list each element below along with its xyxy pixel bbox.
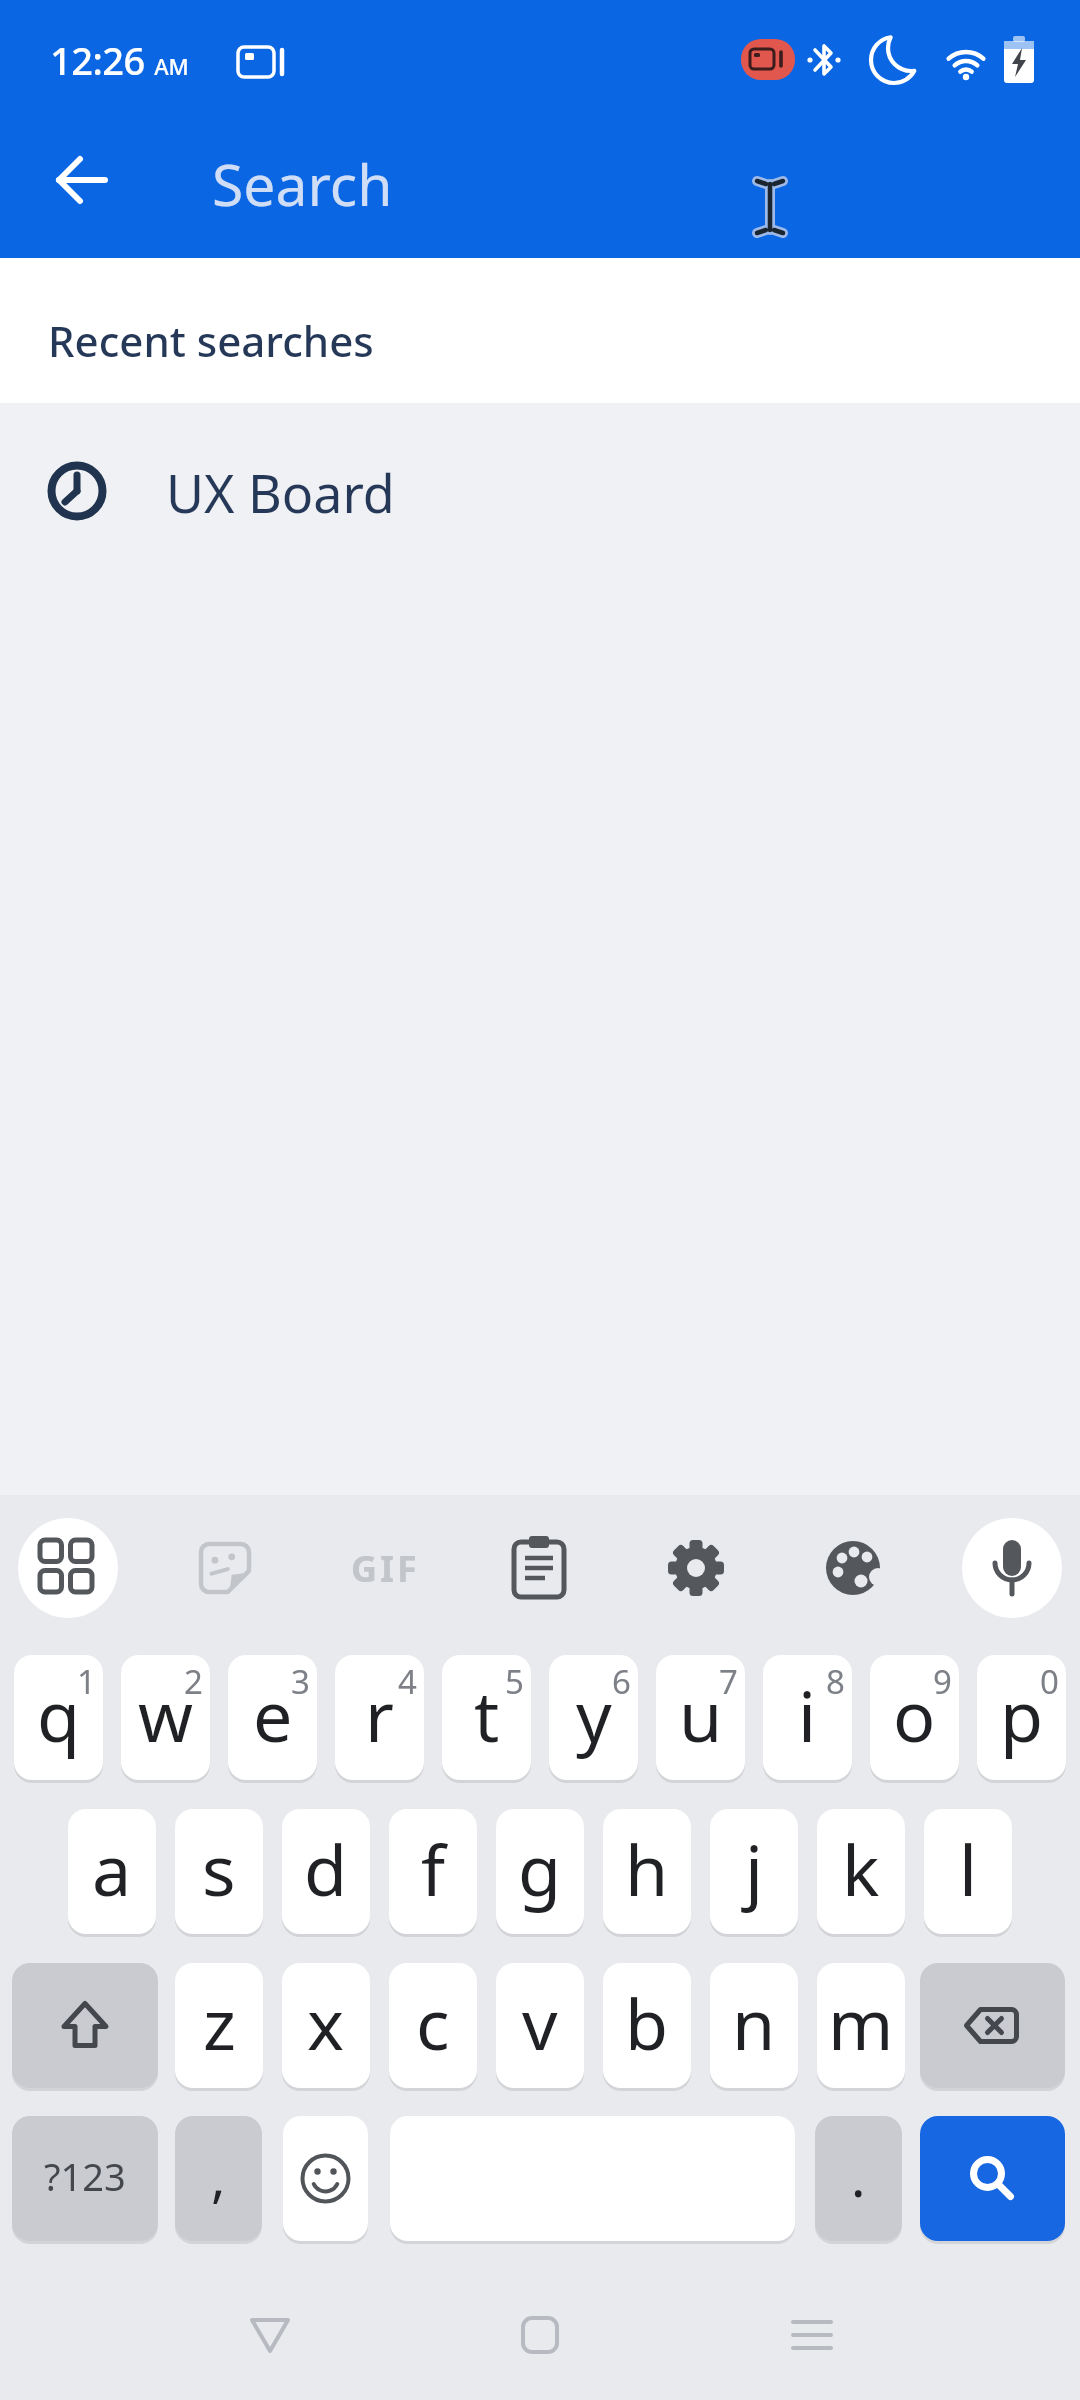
button[interactable]: , [175,2116,262,2241]
button[interactable] [824,1539,882,1597]
staticText: h [625,1821,669,1916]
staticText: l [959,1821,978,1916]
staticText: a [92,1821,132,1916]
button[interactable]: i [763,1655,852,1780]
staticText: c [416,1975,450,2070]
button[interactable] [12,1963,158,2088]
button[interactable]: s [175,1809,263,1934]
staticText: 0 [1040,1659,1059,1704]
button[interactable] [230,2300,310,2370]
button[interactable]: v [496,1963,584,2088]
staticText: 7 [719,1659,738,1704]
staticText: v [522,1975,558,2070]
staticText: s [202,1821,236,1916]
staticText: t [474,1667,500,1762]
staticText: m [828,1975,894,2070]
staticText: 2 [184,1659,203,1704]
button[interactable]: UX Board [0,430,1080,554]
staticText: 5 [505,1659,524,1704]
button[interactable]: u [656,1655,745,1780]
button[interactable] [500,2300,580,2370]
button[interactable] [920,2116,1065,2241]
button[interactable]: l [924,1809,1012,1934]
staticText: f [421,1821,446,1916]
staticText: d [304,1821,348,1916]
button[interactable]: . [815,2116,902,2241]
button[interactable]: x [282,1963,370,2088]
staticText: r [365,1667,394,1762]
button[interactable] [772,2300,852,2370]
button[interactable]: f [389,1809,477,1934]
staticText: 12:26 AM [50,34,189,86]
staticText: ?123 [44,2150,126,2202]
button[interactable]: y [549,1655,638,1780]
staticText: 4 [398,1659,417,1704]
button[interactable]: o [870,1655,959,1780]
button[interactable]: h [603,1809,691,1934]
button[interactable]: Search [140,115,1040,258]
staticText: o [893,1667,936,1762]
staticText: GIF [351,1544,420,1593]
button[interactable]: t [442,1655,531,1780]
staticText: b [625,1975,669,2070]
button[interactable] [962,1518,1062,1618]
button[interactable]: GIF [340,1518,430,1618]
button[interactable] [509,1534,569,1602]
button[interactable]: e [228,1655,317,1780]
button[interactable]: ?123 [12,2116,158,2241]
button[interactable] [197,1540,253,1596]
staticText: p [1000,1667,1044,1762]
staticText: u [679,1667,723,1762]
staticText: g [518,1821,562,1916]
staticText: z [203,1975,236,2070]
staticText: x [307,1975,345,2070]
staticText: j [745,1821,764,1916]
button[interactable]: k [817,1809,905,1934]
staticText: 3 [291,1659,310,1704]
staticText: k [842,1821,880,1916]
staticText: . [851,2139,866,2213]
button[interactable]: w [121,1655,210,1780]
staticText: Recent searches [48,312,374,369]
button[interactable]: j [710,1809,798,1934]
staticText: , [211,2139,226,2213]
staticText: 1 [77,1659,96,1704]
button[interactable]: c [389,1963,477,2088]
staticText: y [576,1667,612,1762]
button[interactable] [667,1539,725,1597]
staticText: 8 [826,1659,845,1704]
staticText: e [253,1667,293,1762]
staticText: 9 [933,1659,952,1704]
button[interactable] [18,1518,118,1618]
button[interactable] [40,138,124,222]
button[interactable]: r [335,1655,424,1780]
button[interactable]: q [14,1655,103,1780]
button[interactable] [283,2116,368,2241]
staticText: n [732,1975,776,2070]
button[interactable]: p [977,1655,1066,1780]
button[interactable]: a [68,1809,156,1934]
staticText: UX Board [166,457,395,528]
staticText: Search [212,145,393,223]
button[interactable]: g [496,1809,584,1934]
button[interactable]: m [817,1963,905,2088]
button[interactable]: d [282,1809,370,1934]
button[interactable]: n [710,1963,798,2088]
button[interactable]: z [175,1963,263,2088]
staticText: q [37,1667,81,1762]
button[interactable] [920,1963,1065,2088]
staticText: 6 [612,1659,631,1704]
button[interactable]: b [603,1963,691,2088]
staticText: i [798,1667,817,1762]
staticText: w [138,1667,194,1762]
